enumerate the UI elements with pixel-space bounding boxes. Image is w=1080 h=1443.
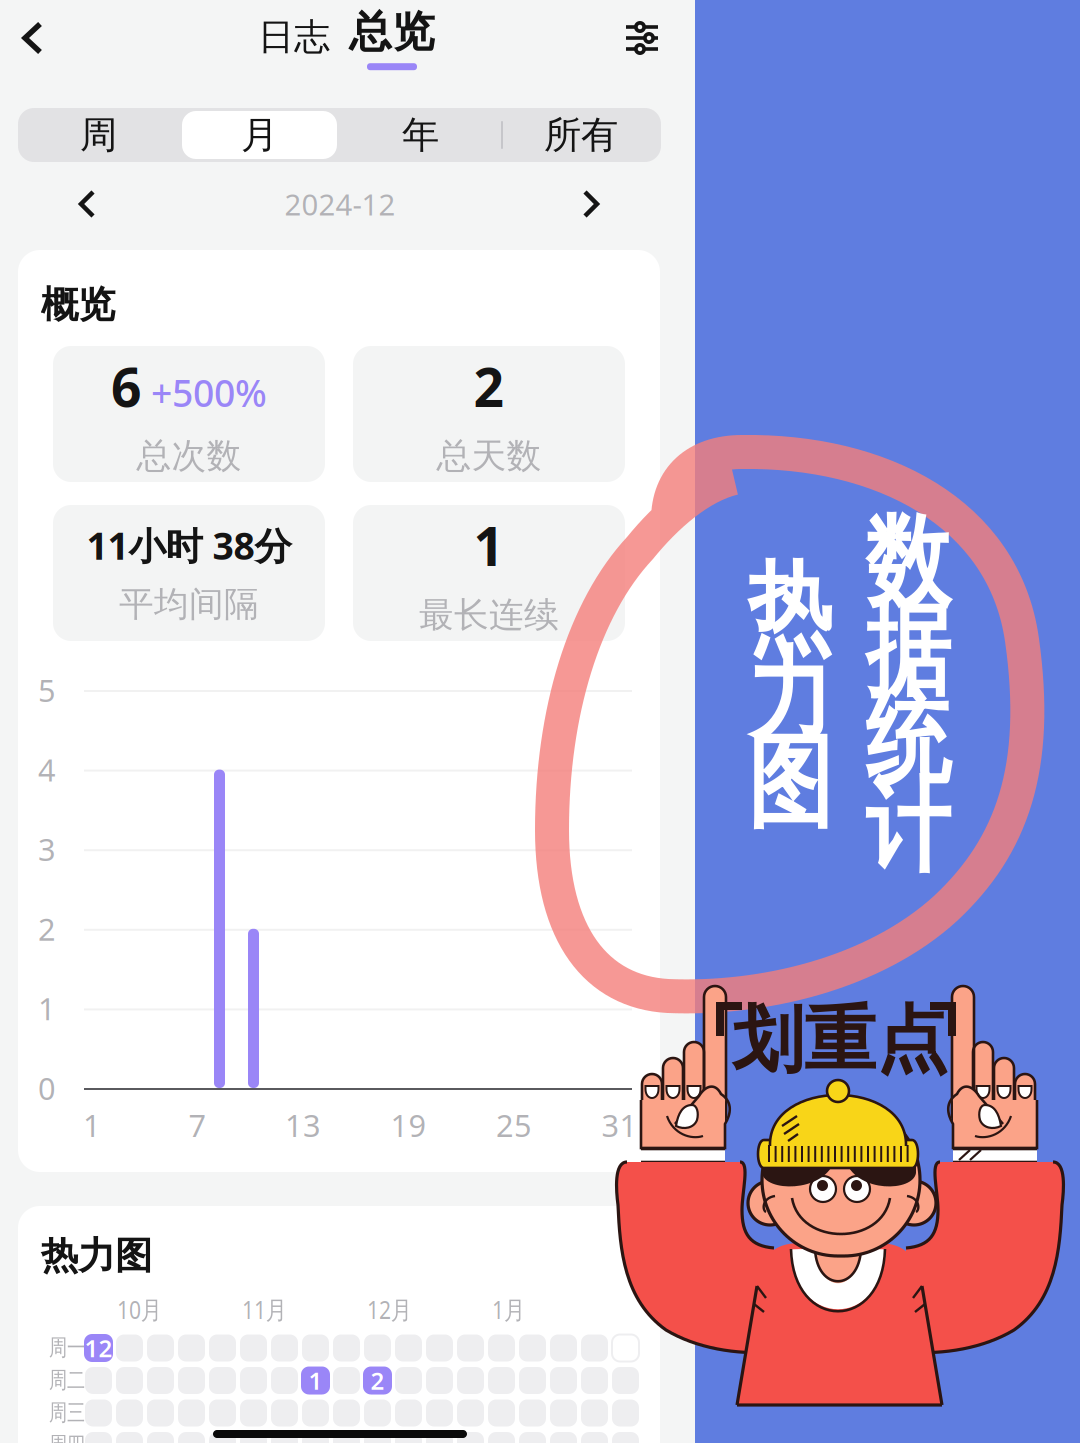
staticText: 5 — [38, 670, 56, 710]
staticText: 2024-12 — [284, 184, 395, 223]
staticText: 7 — [188, 1105, 206, 1145]
staticText: 11小时 38分 — [86, 520, 291, 570]
staticText: 1 — [38, 988, 56, 1029]
staticText: 年 — [402, 112, 439, 158]
staticText: 6 — [111, 351, 142, 422]
staticText: 总览 — [349, 6, 435, 58]
staticText: 周 — [80, 112, 117, 158]
staticText: 热力图 — [41, 1233, 152, 1279]
staticText: 数 — [857, 501, 958, 625]
staticText: 概览 — [41, 282, 115, 328]
staticText: 周一 — [49, 1333, 107, 1369]
staticText: 划重点 — [732, 996, 948, 1084]
staticText: 1月 — [492, 1293, 542, 1335]
staticText: 2 — [473, 351, 504, 422]
staticText: 统 — [857, 677, 958, 801]
staticText: 25 — [496, 1105, 532, 1145]
staticText: 力 — [739, 634, 840, 758]
button[interactable]: 日志 — [250, 4, 338, 70]
staticText: 日志 — [258, 15, 330, 59]
staticText: 12 — [84, 1332, 112, 1364]
button[interactable]: 年 — [340, 108, 501, 162]
button[interactable]: Previous month — [56, 175, 118, 233]
staticText: 3 — [38, 829, 56, 869]
staticText: 总次数 — [136, 435, 241, 477]
staticText: 周二 — [49, 1366, 107, 1402]
button[interactable]: 周 — [18, 108, 179, 162]
staticText: 据 — [857, 589, 958, 713]
staticText: 周三 — [49, 1398, 107, 1434]
staticText: 平均间隔 — [119, 583, 259, 626]
staticText: 1 — [473, 510, 504, 581]
staticText: 1 — [308, 1365, 322, 1396]
staticText: 2 — [38, 908, 56, 949]
staticText: 19 — [390, 1105, 426, 1145]
staticText: 月 — [241, 112, 278, 158]
button[interactable]: Back — [0, 5, 66, 71]
staticText: 0 — [38, 1068, 56, 1108]
staticText: 12月 — [367, 1293, 435, 1335]
staticText: 13 — [285, 1105, 321, 1145]
button[interactable]: 月 — [179, 108, 340, 162]
staticText: 10月 — [117, 1293, 185, 1335]
button[interactable]: 总览 — [344, 0, 440, 78]
staticText: 11月 — [242, 1293, 310, 1335]
staticText: 1 — [83, 1105, 101, 1145]
staticText: 热 — [739, 547, 840, 671]
staticText: 4 — [38, 749, 56, 790]
button[interactable]: Filter — [609, 5, 675, 71]
button[interactable]: Next month — [560, 175, 622, 233]
staticText: 周四 — [49, 1431, 107, 1443]
staticText: 总天数 — [436, 435, 541, 477]
staticText: 最长连续 — [419, 594, 559, 636]
staticText: 所有 — [544, 112, 618, 158]
staticText: 2 — [370, 1365, 384, 1396]
button[interactable]: 所有 — [501, 108, 661, 162]
staticText: 图 — [739, 721, 840, 845]
staticText: 31 — [601, 1105, 637, 1145]
staticText: 计 — [857, 765, 958, 889]
staticText: +500% — [151, 368, 267, 417]
